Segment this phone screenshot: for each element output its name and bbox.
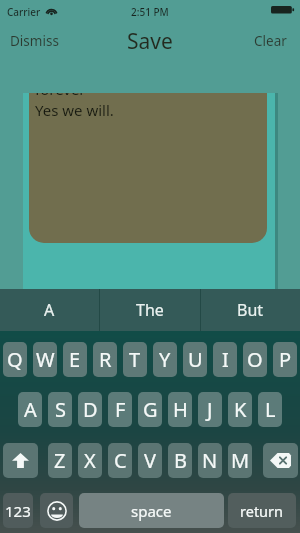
button[interactable]: F <box>108 392 132 427</box>
staticText: T <box>129 346 141 373</box>
button[interactable]: W <box>33 342 57 377</box>
staticText: A <box>44 299 55 321</box>
button[interactable]: R <box>93 342 117 377</box>
button[interactable]: Emoji keyboard <box>40 493 73 528</box>
button[interactable]: P <box>273 342 297 377</box>
button[interactable]: M <box>228 443 252 478</box>
staticText: Y <box>159 346 171 373</box>
button[interactable]: space <box>79 493 224 528</box>
button[interactable]: D <box>78 392 102 427</box>
staticText: Save <box>127 27 173 56</box>
staticText: F <box>115 396 126 423</box>
staticText: P <box>279 346 292 373</box>
button[interactable]: forever <box>29 93 267 243</box>
staticText: U <box>188 346 203 373</box>
button[interactable]: But <box>200 289 300 331</box>
staticText: R <box>99 346 112 373</box>
staticText: L <box>265 396 276 423</box>
staticText: S <box>55 396 66 423</box>
staticText: But <box>237 299 264 321</box>
button[interactable]: X <box>78 443 102 478</box>
button[interactable]: C <box>108 443 132 478</box>
button[interactable]: Clear <box>250 29 291 53</box>
button[interactable]: Y <box>153 342 177 377</box>
button[interactable]: K <box>228 392 252 427</box>
staticText: I <box>222 346 229 373</box>
button[interactable]: I <box>213 342 237 377</box>
button[interactable]: E <box>63 342 87 377</box>
staticText: return <box>240 501 284 521</box>
button[interactable]: The <box>99 289 200 331</box>
button[interactable]: Shift <box>3 443 38 478</box>
button[interactable]: S <box>48 392 72 427</box>
staticText: B <box>174 447 187 474</box>
staticText: D <box>83 396 98 423</box>
staticText: Clear <box>254 32 287 50</box>
staticText: O <box>247 346 263 373</box>
staticText: Z <box>54 447 66 474</box>
staticText: Carrier <box>7 5 41 19</box>
staticText: M <box>231 447 250 474</box>
staticText: W <box>36 346 55 373</box>
staticText: Dismiss <box>10 32 59 50</box>
button[interactable]: L <box>258 392 282 427</box>
button[interactable]: O <box>243 342 267 377</box>
staticText: 2:51 PM <box>131 5 169 19</box>
button[interactable]: N <box>198 443 222 478</box>
button[interactable]: T <box>123 342 147 377</box>
button[interactable]: Dismiss <box>6 29 63 53</box>
staticText: Yes we will. <box>35 100 114 120</box>
button[interactable]: Z <box>48 443 72 478</box>
button[interactable]: 123 <box>3 493 33 528</box>
staticText: N <box>202 447 218 474</box>
button[interactable]: A <box>18 392 42 427</box>
button[interactable]: V <box>138 443 162 478</box>
staticText: E <box>69 346 81 373</box>
staticText: A <box>24 396 37 423</box>
staticText: C <box>114 447 127 474</box>
staticText: space <box>131 501 172 521</box>
staticText: H <box>173 396 188 423</box>
button[interactable]: return <box>228 493 296 528</box>
button[interactable]: G <box>138 392 162 427</box>
staticText: Q <box>7 346 23 373</box>
button[interactable]: A <box>0 289 99 331</box>
button[interactable]: Q <box>3 342 27 377</box>
staticText: G <box>143 396 158 423</box>
button[interactable]: Backspace <box>263 443 298 478</box>
staticText: K <box>234 396 247 423</box>
button[interactable]: U <box>183 342 207 377</box>
button[interactable]: B <box>168 443 192 478</box>
staticText: X <box>84 447 96 474</box>
staticText: V <box>144 447 156 474</box>
button[interactable]: J <box>198 392 222 427</box>
staticText: J <box>207 396 213 423</box>
staticText: The <box>136 299 164 321</box>
staticText: 123 <box>5 501 31 521</box>
button[interactable]: H <box>168 392 192 427</box>
staticText: forever <box>35 93 86 99</box>
